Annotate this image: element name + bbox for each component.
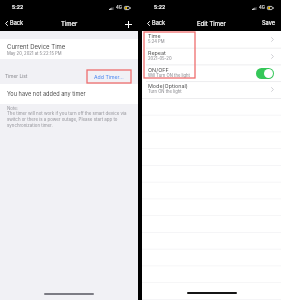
staticText: You have not added any timer	[7, 91, 86, 98]
staticText: Timer	[61, 20, 78, 27]
button[interactable]: You have not added any timer	[0, 84, 138, 104]
staticText: 4G	[259, 5, 265, 10]
button[interactable]: Add timer	[119, 16, 138, 31]
staticText: Current Device Time	[7, 43, 66, 50]
staticText: 5:22	[12, 4, 24, 10]
staticText: May 20, 2021 at 5:22:15 PM	[7, 51, 62, 56]
staticText: ON/OFF	[148, 67, 169, 74]
staticText: Will Turn ON the light	[148, 73, 190, 78]
button[interactable]: Back	[0, 17, 27, 30]
staticText: Turn ON the light	[148, 89, 182, 94]
staticText: 5:22	[154, 4, 166, 10]
staticText: Mode(Optional)	[148, 83, 188, 90]
staticText: 2021-05-20	[148, 56, 172, 61]
staticText: Note:	[7, 106, 19, 111]
staticText: Timer List	[5, 73, 28, 79]
button[interactable]: Mode(Optional)	[142, 81, 281, 98]
staticText: 5:24 PM	[148, 39, 165, 44]
staticText: Edit Timer	[197, 20, 226, 27]
button[interactable]: Repeat	[142, 48, 281, 65]
button[interactable]: Back	[142, 17, 169, 30]
staticText: Save	[262, 20, 275, 27]
button[interactable]: Time	[142, 31, 281, 48]
button[interactable]: ON/OFF toggle	[256, 68, 274, 79]
button[interactable]: Add Timer...	[87, 70, 131, 83]
button[interactable]: ON/OFF	[142, 65, 281, 82]
staticText: Back	[10, 20, 24, 27]
button[interactable]: Save	[256, 16, 281, 31]
staticText: Repeat	[148, 50, 166, 57]
staticText: Back	[152, 20, 166, 27]
staticText: 4G	[116, 5, 122, 10]
staticText: Time	[148, 33, 161, 40]
staticText: Add Timer...	[94, 74, 124, 80]
staticText: The timer will not work if you turn off …	[7, 111, 129, 128]
